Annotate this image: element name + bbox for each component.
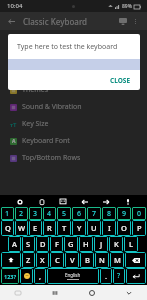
staticText: Gestures [22, 68, 52, 78]
button[interactable]: J [94, 236, 108, 252]
button[interactable]: 123? [1, 268, 19, 284]
button[interactable]: G [64, 236, 78, 252]
button[interactable]: B [80, 252, 94, 268]
button[interactable]: ? [113, 268, 125, 284]
button[interactable]: O [117, 220, 131, 236]
button[interactable]: H [79, 236, 93, 252]
staticText: A [12, 239, 17, 249]
button[interactable]: Space [47, 268, 99, 284]
button[interactable]: M [110, 252, 124, 268]
button[interactable]: A [8, 236, 21, 252]
button[interactable]: U [87, 220, 101, 236]
staticText: English [65, 272, 81, 278]
button[interactable]: Shift [1, 252, 21, 268]
button[interactable]: Languages [0, 30, 147, 47]
button[interactable]: D [36, 236, 49, 252]
staticText: W [18, 223, 26, 233]
button[interactable]: Sound & Vibration [0, 98, 147, 115]
button[interactable]: CLOSE [101, 72, 140, 89]
button[interactable]: Y [72, 220, 86, 236]
button[interactable]: S [22, 236, 35, 252]
staticText: 10:04 [7, 2, 23, 10]
staticText: O [121, 223, 127, 233]
button[interactable]: . [100, 268, 112, 284]
button[interactable]: L [124, 236, 138, 252]
button[interactable]: Back [5, 15, 18, 28]
button[interactable]: X [36, 252, 49, 268]
staticText: H [83, 239, 89, 249]
button[interactable]: Backspace [125, 252, 146, 268]
button[interactable]: 8 [102, 207, 116, 220]
button[interactable]: 7 [87, 207, 101, 220]
staticText: B [85, 255, 90, 265]
staticText: X [40, 255, 45, 265]
button[interactable]: Right [100, 196, 111, 207]
button[interactable]: 9 [117, 207, 131, 220]
button[interactable]: Themes [0, 81, 147, 98]
button[interactable]: 2 [15, 207, 28, 220]
button[interactable]: 6 [72, 207, 86, 220]
staticText: N [99, 255, 105, 265]
button[interactable]: P [132, 220, 146, 236]
staticText: L [129, 239, 134, 249]
button[interactable]: Top/Bottom Rows [0, 149, 147, 166]
button[interactable]: , [34, 268, 46, 284]
button[interactable]: Q [1, 220, 14, 236]
button[interactable]: Recents [36, 285, 73, 300]
button[interactable]: A [0, 132, 147, 149]
staticText: 4 [47, 209, 52, 219]
button[interactable]: тT [0, 115, 147, 132]
staticText: K [114, 239, 119, 249]
button[interactable]: Predictions & Corrections [0, 47, 147, 64]
staticText: 3 [33, 209, 38, 219]
button[interactable]: 0 [132, 207, 146, 220]
button[interactable]: W [15, 220, 28, 236]
button[interactable]: Gestures [0, 64, 147, 81]
button[interactable]: Emoji [20, 268, 33, 284]
staticText: A [12, 138, 16, 145]
staticText: 2 [19, 209, 24, 219]
button[interactable]: C [50, 252, 64, 268]
button[interactable]: Layouts [57, 196, 68, 207]
button[interactable]: Voice [122, 196, 133, 207]
button[interactable]: K [109, 236, 123, 252]
button[interactable]: V [65, 252, 79, 268]
button[interactable]: 3 [29, 207, 42, 220]
button[interactable]: Preview [116, 15, 129, 28]
staticText: Themes [22, 85, 49, 95]
button[interactable]: 4 [43, 207, 56, 220]
button[interactable]: Enter [126, 268, 146, 284]
staticText: Y [77, 223, 82, 233]
button[interactable]: N [95, 252, 109, 268]
staticText: Sound & Vibration [22, 102, 82, 112]
button[interactable]: Left [79, 196, 90, 207]
staticText: Type here to test the keyboard [17, 42, 118, 52]
staticText: S [26, 239, 31, 249]
staticText: Key Size [22, 119, 49, 129]
staticText: 8 [107, 209, 112, 219]
staticText: Z [26, 255, 31, 265]
button[interactable]: Clipboard [36, 196, 47, 207]
button[interactable]: I [102, 220, 116, 236]
staticText: Q [5, 223, 11, 233]
button[interactable]: T [57, 220, 71, 236]
button[interactable]: Home [73, 285, 110, 300]
button[interactable]: More options [129, 15, 142, 28]
staticText: ? [117, 271, 121, 281]
button[interactable]: 5 [57, 207, 71, 220]
button[interactable]: Hide keyboard [110, 285, 147, 300]
button[interactable]: Settings [14, 196, 25, 207]
button[interactable]: E [29, 220, 42, 236]
button[interactable]: Keyboard switch [0, 285, 36, 300]
staticText: C [55, 255, 60, 265]
staticText: R [47, 223, 52, 233]
staticText: Top/Bottom Rows [22, 153, 81, 163]
staticText: 7 [92, 209, 97, 219]
button[interactable]: Z [22, 252, 35, 268]
staticText: I [108, 223, 111, 233]
button[interactable]: F [50, 236, 63, 252]
button[interactable]: 1 [1, 207, 14, 220]
button[interactable]: R [43, 220, 56, 236]
staticText: G [68, 239, 74, 249]
staticText: 5 [62, 209, 67, 219]
